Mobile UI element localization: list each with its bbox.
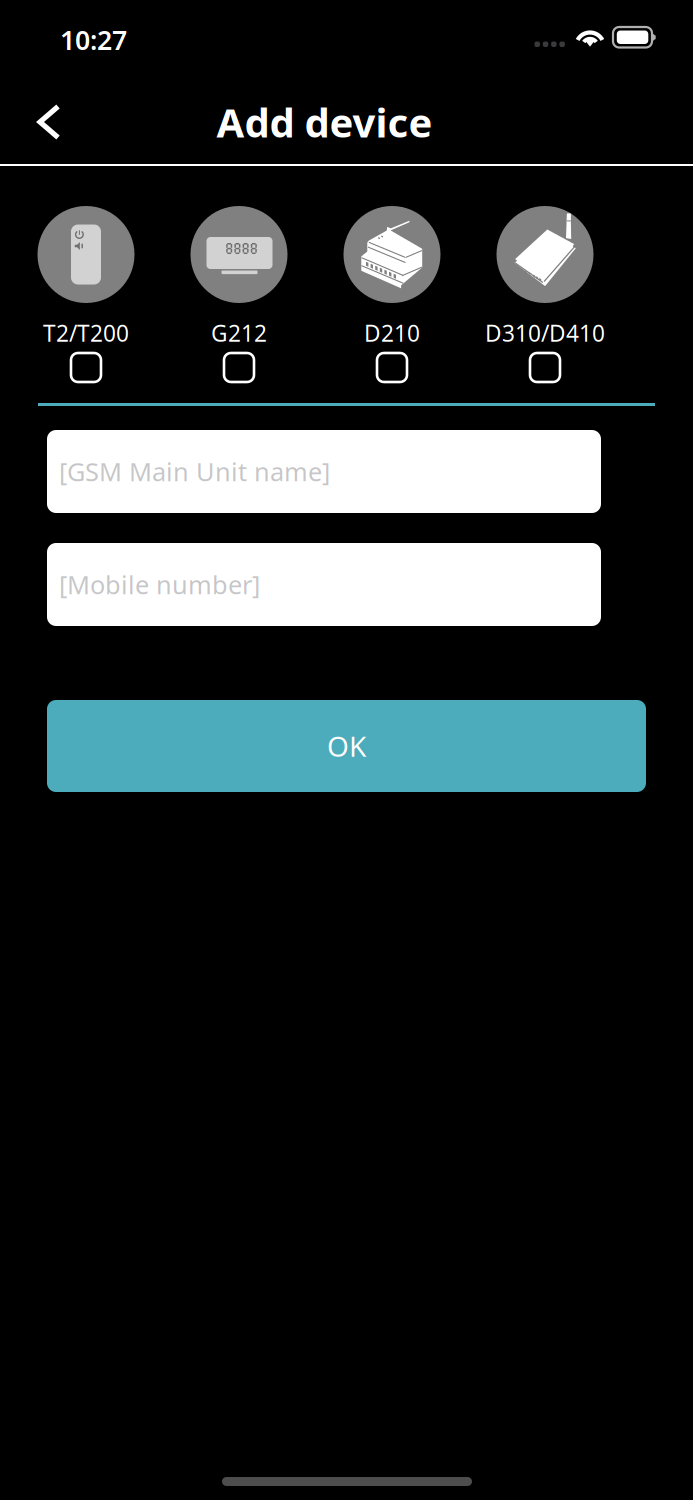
staticText: T2/T200	[43, 318, 129, 348]
button[interactable]: D210	[315, 206, 468, 388]
button[interactable]: T2/T200	[9, 206, 162, 388]
staticText: [Mobile number]	[59, 568, 260, 601]
staticText: G212	[211, 318, 267, 348]
button[interactable]: Back	[18, 83, 98, 161]
button[interactable]: OK	[47, 700, 646, 792]
staticText: D210	[364, 318, 420, 348]
button[interactable]: [GSM Main Unit name]	[47, 430, 601, 513]
staticText: [GSM Main Unit name]	[59, 455, 330, 488]
button[interactable]: G212	[162, 206, 315, 388]
button[interactable]: [Mobile number]	[47, 543, 601, 626]
staticText: Add device	[216, 95, 432, 148]
staticText: 10:27	[60, 22, 127, 57]
button[interactable]: D310/D410	[468, 206, 621, 388]
staticText: OK	[327, 727, 366, 765]
staticText: D310/D410	[485, 318, 605, 348]
